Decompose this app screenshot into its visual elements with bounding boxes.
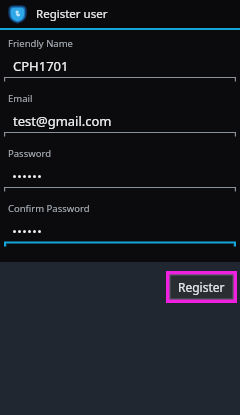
staticText: Register user xyxy=(36,6,108,22)
button[interactable]: Friendly Name xyxy=(0,37,240,81)
button[interactable]: Email xyxy=(0,92,240,136)
button[interactable]: Password xyxy=(0,147,240,191)
other: App icon xyxy=(8,5,27,24)
button[interactable]: Confirm Password xyxy=(0,202,240,246)
staticText: Friendly Name xyxy=(8,37,73,50)
staticText: Email xyxy=(8,92,33,105)
staticText: Password xyxy=(8,147,51,160)
staticText: CPH1701 xyxy=(13,57,69,75)
button[interactable]: Register xyxy=(170,275,233,299)
staticText: Register xyxy=(178,279,225,295)
staticText: Confirm Password xyxy=(8,202,90,215)
staticText: test@gmail.com xyxy=(13,112,112,130)
